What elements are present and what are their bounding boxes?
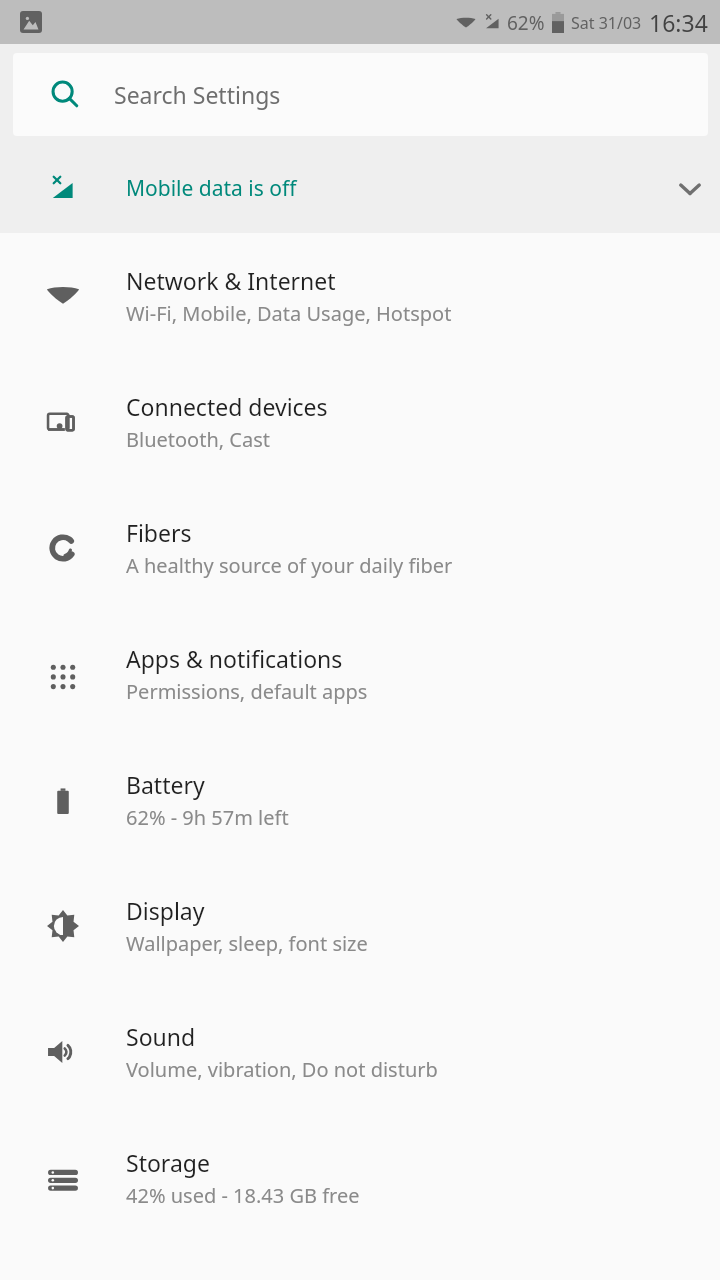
button[interactable]: Search Settings [13, 53, 708, 136]
staticText: 42% used - 18.43 GB free [126, 1182, 360, 1209]
button[interactable]: Connected devices [0, 359, 720, 485]
button[interactable]: Display [0, 863, 720, 989]
staticText: 16:34 [649, 7, 708, 38]
staticText: Connected devices [126, 391, 328, 422]
staticText: 62% [507, 10, 545, 36]
button[interactable]: Expand [660, 159, 720, 219]
staticText: Wallpaper, sleep, font size [126, 930, 368, 957]
button[interactable]: Battery [0, 737, 720, 863]
staticText: 62% - 9h 57m left [126, 804, 289, 831]
staticText: Volume, vibration, Do not disturb [126, 1056, 438, 1083]
staticText: Permissions, default apps [126, 678, 368, 705]
button[interactable]: Sound [0, 989, 720, 1115]
button[interactable]: Network & Internet [0, 233, 720, 359]
staticText: Fibers [126, 517, 192, 548]
staticText: Sound [126, 1021, 196, 1052]
button[interactable]: Fibers [0, 485, 720, 611]
staticText: Apps & notifications [126, 643, 343, 674]
staticText: Battery [126, 769, 205, 800]
staticText: Mobile data is off [126, 174, 297, 203]
staticText: Display [126, 895, 205, 926]
staticText: Storage [126, 1147, 210, 1178]
staticText: A healthy source of your daily fiber [126, 552, 453, 579]
button[interactable]: Mobile data is off [0, 144, 720, 233]
staticText: Search Settings [114, 79, 281, 110]
button[interactable]: Storage [0, 1115, 720, 1241]
button[interactable]: Apps & notifications [0, 611, 720, 737]
staticText: Bluetooth, Cast [126, 426, 271, 453]
staticText: Sat 31/03 [571, 12, 642, 34]
staticText: Network & Internet [126, 265, 336, 296]
staticText: Wi-Fi, Mobile, Data Usage, Hotspot [126, 300, 452, 327]
